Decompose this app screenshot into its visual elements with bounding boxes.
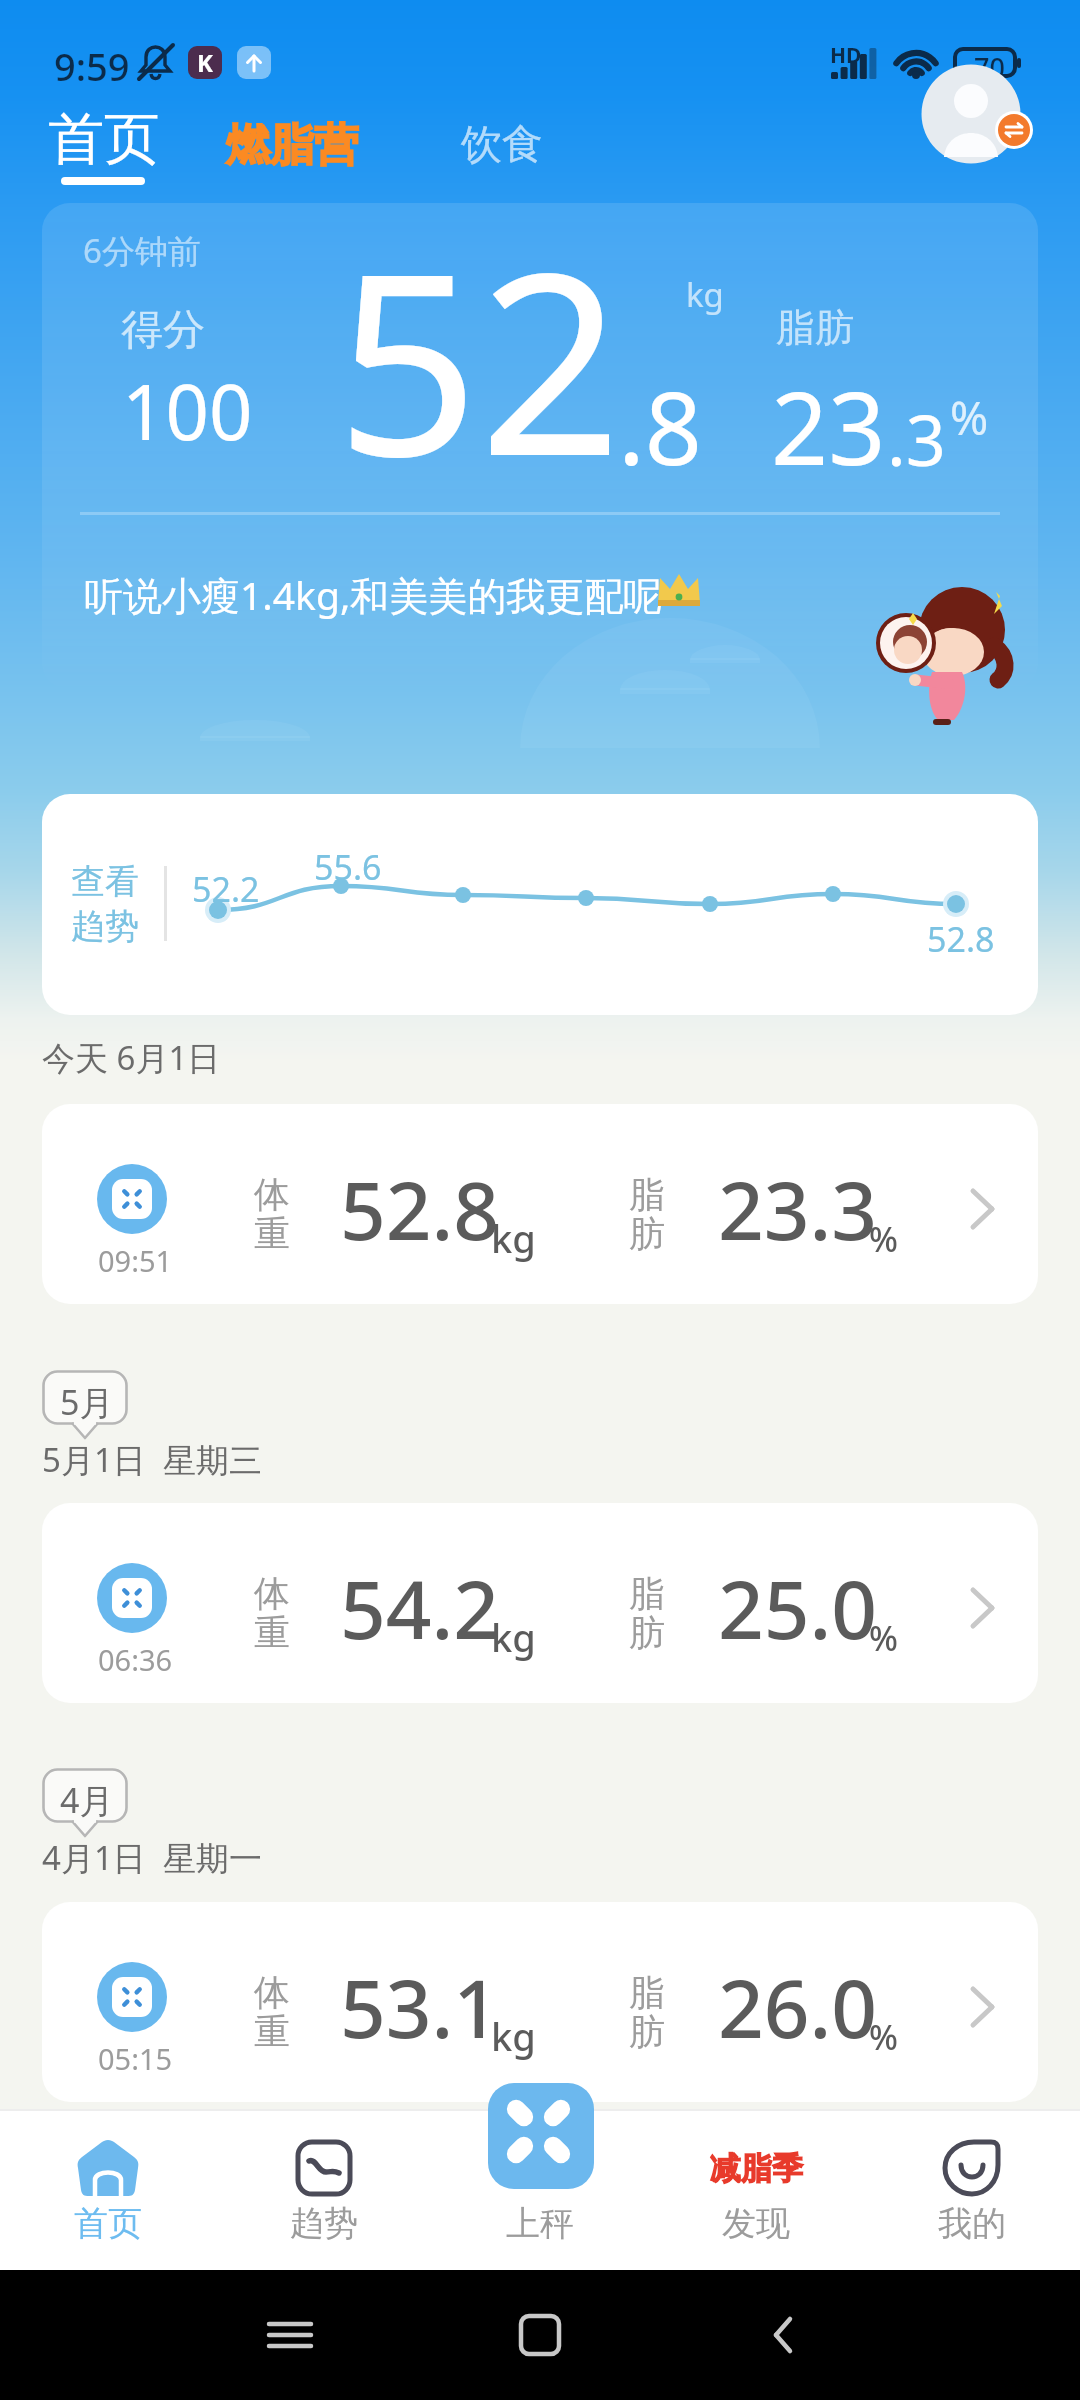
staticText: .8 xyxy=(618,358,702,494)
button[interactable] xyxy=(42,203,1038,689)
button[interactable]: Recents xyxy=(245,2290,335,2380)
staticText: 52.8 xyxy=(340,1154,500,1263)
staticText: 饮食 xyxy=(461,119,543,171)
staticText: 发现 xyxy=(648,2202,864,2245)
staticText: % xyxy=(950,386,989,449)
button[interactable]: 我的 xyxy=(864,2109,1080,2270)
staticText: kg xyxy=(491,1611,536,1663)
staticText: 脂 xyxy=(629,1172,665,1217)
staticText: 6分钟前 xyxy=(83,228,201,273)
staticText: 05:15 xyxy=(98,2039,173,2078)
button[interactable]: Profile xyxy=(921,69,1035,183)
staticText: 减脂季 xyxy=(710,2149,803,2188)
staticText: 首页 xyxy=(46,104,162,175)
staticText: 70 xyxy=(974,49,1005,86)
staticText: 体 xyxy=(254,1172,290,1217)
staticText: 52.8 xyxy=(927,916,995,962)
staticText: 体 xyxy=(254,1970,290,2015)
staticText: 09:51 xyxy=(98,1241,173,1280)
staticText: 25.0 xyxy=(718,1553,878,1662)
staticText: 4月1日 星期一 xyxy=(42,1835,262,1880)
button[interactable]: Back xyxy=(740,2290,830,2380)
button[interactable]: 09:51 xyxy=(42,1104,1038,1304)
button[interactable]: 首页 xyxy=(30,96,178,196)
staticText: 我的 xyxy=(864,2202,1080,2245)
button[interactable]: 06:36 xyxy=(42,1503,1038,1703)
button[interactable]: 查看 xyxy=(42,794,1038,1015)
staticText: 06:36 xyxy=(98,1640,173,1679)
staticText: 4月 xyxy=(60,1777,114,1823)
staticText: kg xyxy=(491,1212,536,1264)
button[interactable]: 减脂季 xyxy=(648,2109,864,2270)
staticText: 脂 xyxy=(629,1970,665,2015)
staticText: 肪 xyxy=(629,1211,665,1256)
staticText: 55.6 xyxy=(314,844,382,890)
staticText: 肪 xyxy=(629,2009,665,2054)
staticText: 5月 xyxy=(60,1379,114,1425)
staticText: 体 xyxy=(254,1571,290,1616)
staticText: 今天 6月1日 xyxy=(42,1035,221,1080)
button[interactable]: Home xyxy=(495,2290,585,2380)
staticText: 脂肪 xyxy=(776,303,854,352)
staticText: 趋势 xyxy=(71,905,139,948)
staticText: 查看 xyxy=(71,860,139,903)
staticText: 53.1 xyxy=(340,1952,500,2061)
staticText: kg xyxy=(491,2010,536,2062)
staticText: % xyxy=(869,1216,898,1262)
staticText: 54.2 xyxy=(340,1553,500,1662)
staticText: .3 xyxy=(887,391,946,486)
staticText: 脂 xyxy=(629,1571,665,1616)
staticText: % xyxy=(869,2014,898,2060)
staticText: 趋势 xyxy=(216,2202,432,2245)
button[interactable]: 饮食 xyxy=(461,119,553,179)
staticText: % xyxy=(869,1615,898,1661)
staticText: kg xyxy=(686,272,724,317)
staticText: 100 xyxy=(122,359,253,463)
button[interactable]: 上秤 xyxy=(488,2083,594,2189)
staticText: 听说小瘦1.4kg,和美美的我更配呢 xyxy=(84,568,663,621)
button[interactable]: 05:15 xyxy=(42,1902,1038,2102)
staticText: 重 xyxy=(254,2009,290,2054)
staticText: 重 xyxy=(254,1610,290,1655)
staticText: 52 xyxy=(336,188,622,529)
staticText: 燃脂营 xyxy=(226,118,358,173)
staticText: 26.0 xyxy=(718,1952,878,2061)
staticText: 肪 xyxy=(629,1610,665,1655)
staticText: 52.2 xyxy=(192,866,260,912)
button[interactable]: 上秤 xyxy=(464,2190,616,2266)
button[interactable]: 4月 xyxy=(42,1768,152,1840)
staticText: 5月1日 星期三 xyxy=(42,1437,262,1482)
staticText: 首页 xyxy=(0,2202,216,2245)
staticText: 得分 xyxy=(121,304,205,357)
staticText: 上秤 xyxy=(0,2202,1080,2245)
staticText: 23 xyxy=(771,358,886,494)
button[interactable]: 5月 xyxy=(42,1370,152,1442)
staticText: HD xyxy=(830,41,862,70)
staticText: 9:59 xyxy=(54,40,130,92)
button[interactable]: 首页 xyxy=(0,2109,216,2270)
staticText: K xyxy=(197,46,213,79)
button[interactable]: 燃脂营 xyxy=(226,118,366,182)
button[interactable]: 趋势 xyxy=(216,2109,432,2270)
staticText: 23.3 xyxy=(718,1154,878,1263)
staticText: 重 xyxy=(254,1211,290,1256)
